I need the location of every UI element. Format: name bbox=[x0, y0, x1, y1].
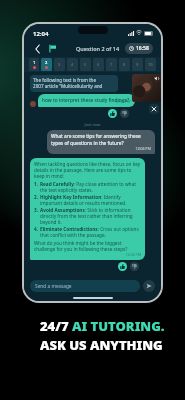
staticText: how to interpret these study findings? bbox=[42, 97, 130, 104]
staticText: When tackling questions like these, focu… bbox=[34, 161, 141, 179]
button[interactable]: The following text is from the 2007 arti… bbox=[30, 75, 118, 92]
button[interactable]: 6 bbox=[93, 58, 104, 71]
button[interactable]: 3 bbox=[54, 58, 65, 71]
button[interactable]: Back bbox=[32, 43, 43, 54]
staticText: ASK US ANYTHING bbox=[40, 336, 163, 354]
staticText: Highlight Key Information: Identify impo… bbox=[40, 194, 141, 206]
staticText: 1. bbox=[34, 181, 40, 187]
staticText: 12:01 PM bbox=[115, 99, 131, 104]
button[interactable]: how to interpret these study findings? bbox=[38, 94, 135, 107]
staticText: 4. bbox=[34, 226, 40, 232]
staticText: 6 bbox=[97, 62, 100, 67]
button[interactable]: When tackling questions like these, focu… bbox=[30, 158, 145, 260]
staticText: 5 bbox=[84, 62, 87, 67]
staticText: 16:58 bbox=[136, 45, 149, 52]
staticText: 10 bbox=[148, 62, 153, 67]
staticText: What are some tips for answering these t… bbox=[51, 133, 151, 146]
staticText: Send a message bbox=[35, 283, 72, 290]
button[interactable]: Helpful bbox=[108, 109, 117, 118]
button[interactable]: Send bbox=[143, 280, 155, 292]
button[interactable]: Send a message bbox=[30, 280, 140, 292]
staticText: Avoid Assumptions: Stick to information … bbox=[40, 207, 141, 225]
button[interactable]: 4 bbox=[67, 58, 78, 71]
staticText: 2. bbox=[34, 194, 40, 200]
staticText: 2 bbox=[45, 60, 48, 65]
staticText: 1 bbox=[33, 60, 36, 65]
staticText: 3. bbox=[34, 207, 40, 213]
button[interactable]: What are some tips for answering these t… bbox=[47, 130, 155, 154]
button[interactable]: Helpful bbox=[118, 262, 127, 271]
button[interactable]: 16:58 bbox=[125, 43, 153, 54]
staticText: Just now bbox=[30, 122, 155, 127]
staticText: Eliminate Contradictions: Cross out opti… bbox=[40, 226, 141, 238]
staticText: Question 2 of 14 bbox=[76, 45, 120, 52]
button[interactable]: Flag question bbox=[47, 43, 58, 54]
staticText: 8 bbox=[123, 62, 126, 67]
button[interactable]: 2 bbox=[41, 58, 52, 71]
button[interactable]: Not helpful bbox=[120, 109, 129, 118]
staticText: 7 bbox=[110, 62, 113, 67]
staticText: What do you think might be the biggest c… bbox=[34, 240, 141, 252]
staticText: 9 bbox=[136, 62, 139, 67]
staticText: 12:04 bbox=[33, 30, 49, 38]
button[interactable]: 5 bbox=[80, 58, 91, 71]
button[interactable]: 9 bbox=[132, 58, 143, 71]
staticText: 4 bbox=[71, 62, 74, 67]
button[interactable]: Close video bbox=[149, 104, 159, 114]
button[interactable]: 10 bbox=[145, 58, 156, 71]
button[interactable]: 7 bbox=[106, 58, 117, 71]
button[interactable]: Not helpful bbox=[130, 262, 139, 271]
staticText: Read Carefully: Pay close attention to w… bbox=[40, 181, 141, 193]
staticText: 24/7 AI TUTORING. bbox=[40, 317, 165, 335]
button[interactable]: 1 bbox=[29, 58, 39, 71]
staticText: 3 bbox=[58, 62, 61, 67]
staticText: 12:04 PM bbox=[34, 252, 141, 257]
button[interactable]: Tutor video bbox=[132, 74, 161, 102]
staticText: 12:04 PM bbox=[51, 146, 151, 151]
button[interactable]: 8 bbox=[119, 58, 130, 71]
staticText: The following text is from the 2007 arti… bbox=[33, 77, 103, 90]
